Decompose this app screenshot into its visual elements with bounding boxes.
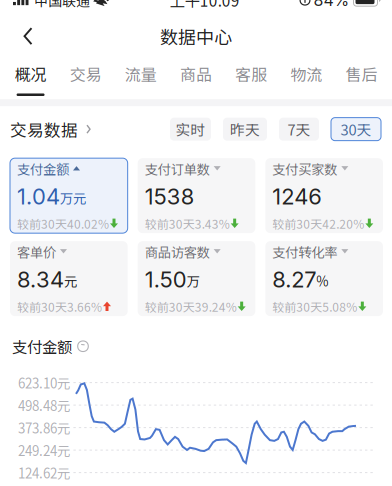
staticText: 1.50 [145, 266, 187, 293]
staticText: 交易 [70, 62, 102, 85]
staticText: 较前30天3.66% [17, 298, 102, 315]
staticText: 售后 [345, 62, 377, 85]
button[interactable]: 返回 [9, 17, 47, 55]
button[interactable]: 交易数据 [10, 111, 91, 147]
staticText: 万元 [60, 188, 86, 207]
staticText: 流量 [125, 62, 157, 85]
button[interactable]: 交易 [58, 56, 113, 99]
button[interactable]: 商品访客数 [138, 241, 255, 316]
staticText: 物流 [290, 62, 322, 85]
staticText: 上午10:09 [170, 0, 240, 11]
staticText: 498.48元 [18, 395, 70, 415]
staticText: 8.34 [17, 266, 64, 293]
button[interactable]: 商品 [168, 56, 223, 99]
staticText: 商品访客数 [145, 242, 210, 261]
staticText: 较前30天5.08% [272, 298, 357, 315]
staticText: 元 [64, 271, 77, 290]
button[interactable]: 支付订单数 [138, 158, 255, 233]
staticText: 623.10元 [18, 373, 70, 392]
button[interactable]: 7天 [279, 118, 319, 141]
staticText: % [316, 271, 328, 290]
button[interactable]: 昨天 [223, 118, 267, 141]
button[interactable]: 售后 [334, 56, 389, 99]
staticText: 万 [187, 271, 200, 290]
staticText: 较前30天3.43% [145, 215, 230, 232]
button[interactable]: 说明 [77, 340, 89, 352]
button[interactable]: 支付金额 [10, 158, 128, 233]
button[interactable]: 物流 [279, 56, 334, 99]
staticText: 支付金额 [12, 335, 72, 357]
button[interactable]: 支付转化率 [265, 241, 383, 316]
staticText: 30天 [340, 118, 371, 140]
staticText: 概况 [15, 62, 47, 85]
staticText: 中国联通 [34, 0, 90, 10]
staticText: 客单价 [17, 242, 56, 261]
button[interactable]: 概况 [3, 56, 58, 99]
button[interactable]: 支付买家数 [265, 158, 383, 233]
staticText: 1538 [145, 183, 195, 210]
button[interactable]: 30天 [331, 118, 381, 141]
staticText: 1.04 [17, 183, 60, 210]
staticText: 支付买家数 [272, 159, 337, 178]
staticText: 249.24元 [18, 440, 70, 460]
staticText: 较前30天40.02% [17, 215, 109, 232]
staticText: 支付订单数 [145, 159, 210, 178]
button[interactable]: 客单价 [10, 241, 128, 316]
staticText: 数据中心 [160, 23, 232, 49]
staticText: 84% [313, 0, 349, 10]
staticText: 7天 [287, 118, 310, 140]
button[interactable]: 实时 [170, 118, 211, 141]
button[interactable]: 客服 [224, 56, 279, 99]
staticText: 交易数据 [10, 117, 78, 141]
staticText: 支付金额 [17, 159, 69, 178]
staticText: 373.86元 [18, 418, 70, 437]
staticText: 实时 [175, 118, 205, 140]
staticText: 较前30天39.24% [145, 298, 237, 315]
staticText: 1246 [272, 183, 322, 210]
staticText: 昨天 [230, 118, 260, 140]
staticText: 商品 [180, 62, 212, 85]
staticText: 124.62元 [18, 463, 70, 482]
staticText: 支付转化率 [272, 242, 337, 261]
button[interactable]: 流量 [113, 56, 168, 99]
staticText: 较前30天42.20% [272, 215, 364, 232]
staticText: 8.27 [272, 266, 316, 293]
staticText: 客服 [235, 62, 267, 85]
